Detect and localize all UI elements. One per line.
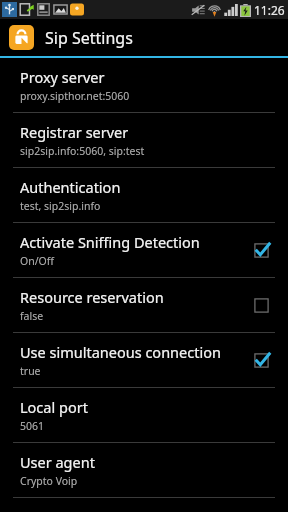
staticText: Resource reservation [20,287,164,307]
staticText: User agent [20,452,95,472]
staticText: Sip Settings [45,27,133,49]
staticText: Activate Sniffing Detection [20,232,200,252]
staticText: true [20,364,41,378]
button[interactable]: Use simultaneous connection [0,333,288,387]
staticText: test, sip2sip.info [20,199,101,213]
button[interactable]: Unchecked [248,292,274,318]
staticText: Registrar server [20,122,129,142]
staticText: proxy.sipthor.net:5060 [20,89,130,103]
button[interactable]: Resource reservation [0,278,288,332]
button[interactable]: Local port [0,388,288,442]
button[interactable]: Checked [248,347,274,373]
staticText: sip2sip.info:5060, sip:test [20,144,145,158]
button[interactable]: Registrar server [0,113,288,167]
staticText: On/Off [20,254,55,268]
button[interactable]: Proxy server [0,58,288,112]
button[interactable]: User agent [0,443,288,497]
button[interactable]: Sip Settings [0,19,288,56]
button[interactable]: Authentication [0,168,288,222]
staticText: 11:26 [254,2,285,18]
staticText: Proxy server [20,67,105,87]
staticText: Crypto Voip [20,474,78,488]
staticText: Local port [20,397,88,417]
staticText: Authentication [20,177,121,197]
staticText: false [20,309,44,323]
staticText: Use simultaneous connection [20,342,221,362]
button[interactable]: Activate Sniffing Detection [0,223,288,277]
staticText: 5061 [20,419,45,433]
button[interactable]: Checked [248,237,274,263]
